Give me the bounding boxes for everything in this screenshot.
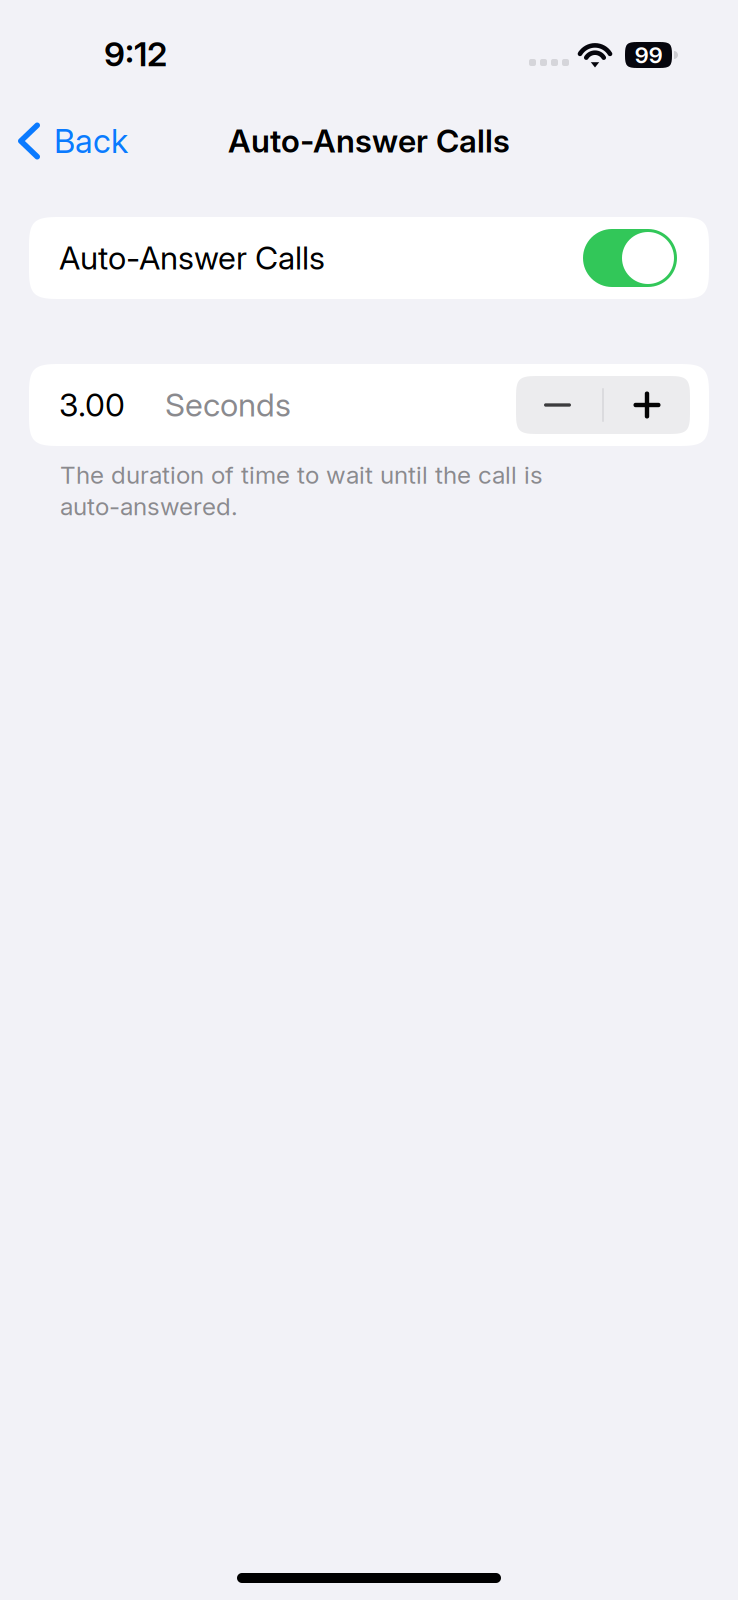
staticText: 99 [634,41,662,69]
staticText: Auto-Answer Calls [59,239,325,277]
staticText: Back [54,121,128,161]
button[interactable]: Back [0,110,140,172]
button[interactable]: Auto-Answer Calls [583,229,677,287]
button[interactable]: Increase [604,376,690,434]
staticText: 9:12 [104,34,167,74]
staticText: The duration of time to wait until the c… [60,460,543,521]
staticText: 3.00 [59,386,125,424]
staticText: Auto-Answer Calls [228,122,510,160]
button[interactable]: Decrease [516,376,602,434]
staticText: Seconds [165,386,291,424]
